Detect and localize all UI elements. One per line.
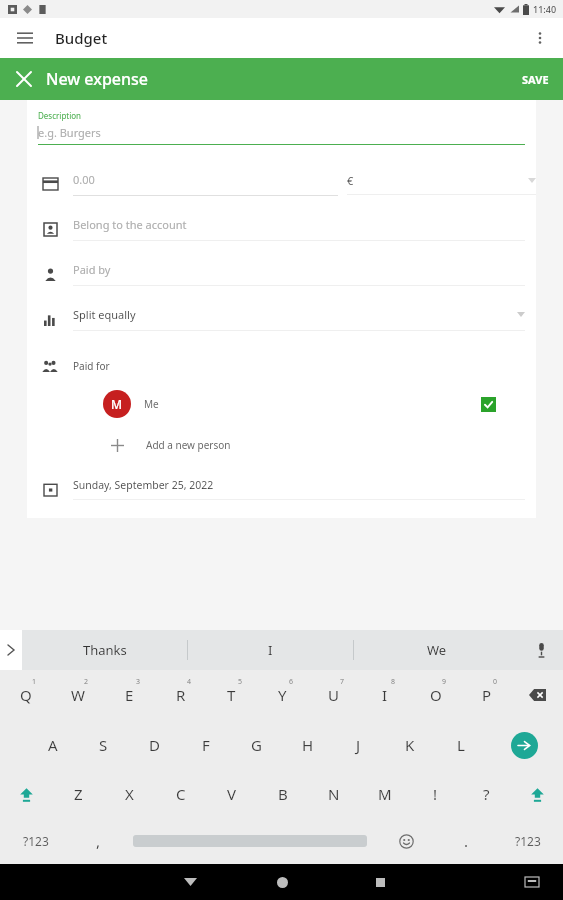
button[interactable]: Home: [267, 867, 297, 897]
staticText: ?: [483, 784, 490, 804]
staticText: €: [347, 173, 354, 188]
button[interactable]: A: [27, 720, 78, 770]
staticText: O: [430, 685, 442, 705]
button[interactable]: !: [410, 770, 461, 818]
staticText: I: [268, 641, 273, 659]
staticText: T: [227, 685, 236, 705]
button[interactable]: U: [308, 670, 359, 720]
button[interactable]: L: [435, 720, 486, 770]
button[interactable]: SAVE: [508, 64, 563, 95]
button[interactable]: Emoji: [374, 818, 439, 864]
button[interactable]: X: [104, 770, 155, 818]
button[interactable]: Paid by: [73, 262, 525, 286]
button[interactable]: Description: [27, 110, 536, 145]
button[interactable]: J: [333, 720, 384, 770]
staticText: 1: [32, 677, 37, 687]
button[interactable]: N: [308, 770, 359, 818]
staticText: R: [176, 685, 186, 705]
button[interactable]: M: [359, 770, 410, 818]
button[interactable]: Belong to the account: [73, 217, 525, 241]
staticText: J: [356, 735, 361, 755]
button[interactable]: Open navigation drawer: [10, 23, 40, 53]
button[interactable]: Backspace: [512, 670, 563, 720]
button[interactable]: H: [282, 720, 333, 770]
staticText: B: [278, 784, 288, 804]
button[interactable]: .: [439, 818, 493, 864]
button[interactable]: ,: [71, 818, 125, 864]
button[interactable]: Sunday, September 25, 2022: [27, 474, 536, 504]
staticText: Paid by: [73, 262, 111, 277]
staticText: ?123: [515, 833, 541, 849]
staticText: SAVE: [522, 72, 549, 87]
button[interactable]: Add a new person: [27, 430, 536, 460]
button[interactable]: Q: [0, 670, 52, 720]
staticText: M: [378, 784, 392, 804]
button[interactable]: Shift: [0, 770, 52, 818]
button[interactable]: Close: [10, 65, 38, 93]
button[interactable]: F: [180, 720, 231, 770]
staticText: 2: [84, 677, 89, 687]
button[interactable]: S: [78, 720, 129, 770]
button[interactable]: G: [231, 720, 282, 770]
staticText: Add a new person: [146, 438, 231, 452]
staticText: I: [382, 685, 388, 705]
button[interactable]: Switch keyboard: [517, 867, 547, 897]
button[interactable]: Thanks: [22, 630, 187, 670]
button[interactable]: ?123: [493, 818, 563, 864]
staticText: X: [125, 784, 134, 804]
button[interactable]: €: [347, 173, 536, 195]
staticText: Paid for: [73, 359, 110, 373]
button[interactable]: Enter: [486, 720, 563, 770]
staticText: D: [149, 735, 160, 755]
button[interactable]: 0.00: [73, 172, 338, 196]
staticText: G: [251, 735, 262, 755]
staticText: ,: [96, 831, 101, 851]
staticText: 7: [340, 677, 345, 687]
button[interactable]: P: [461, 670, 512, 720]
button[interactable]: V: [206, 770, 257, 818]
staticText: e.g. Burgers: [38, 125, 101, 140]
button[interactable]: K: [384, 720, 435, 770]
button[interactable]: E: [104, 670, 155, 720]
button[interactable]: M: [27, 385, 536, 423]
button[interactable]: Recent apps: [365, 867, 395, 897]
staticText: V: [227, 784, 237, 804]
staticText: Q: [20, 685, 32, 705]
button[interactable]: Z: [52, 770, 104, 818]
button[interactable]: ?123: [0, 818, 71, 864]
staticText: 0: [493, 677, 498, 687]
button[interactable]: T: [206, 670, 257, 720]
button[interactable]: Voice input: [519, 630, 563, 670]
button[interactable]: O: [410, 670, 461, 720]
staticText: Sunday, September 25, 2022: [73, 478, 214, 492]
button[interactable]: Space: [125, 818, 374, 864]
button[interactable]: Shift: [512, 770, 563, 818]
staticText: ?123: [23, 833, 49, 849]
button[interactable]: C: [155, 770, 206, 818]
button[interactable]: I: [359, 670, 410, 720]
staticText: New expense: [46, 68, 149, 90]
staticText: 6: [289, 677, 294, 687]
staticText: H: [302, 735, 314, 755]
button[interactable]: ?: [461, 770, 512, 818]
staticText: F: [202, 735, 210, 755]
staticText: 11:40: [533, 3, 557, 15]
staticText: 4: [187, 677, 192, 687]
button[interactable]: D: [129, 720, 180, 770]
button[interactable]: Y: [257, 670, 308, 720]
staticText: 0.00: [73, 172, 95, 187]
staticText: W: [71, 685, 85, 705]
staticText: M: [111, 396, 123, 412]
button[interactable]: Split equally: [73, 307, 525, 331]
button[interactable]: We: [354, 630, 519, 670]
button[interactable]: R: [155, 670, 206, 720]
button[interactable]: B: [257, 770, 308, 818]
staticText: Y: [278, 685, 287, 705]
button[interactable]: Back: [175, 867, 205, 897]
button[interactable]: I: [188, 630, 353, 670]
button[interactable]: More options: [525, 23, 555, 53]
button[interactable]: Expand suggestions: [0, 630, 22, 670]
button[interactable]: W: [52, 670, 104, 720]
staticText: P: [482, 685, 492, 705]
staticText: Z: [74, 784, 83, 804]
